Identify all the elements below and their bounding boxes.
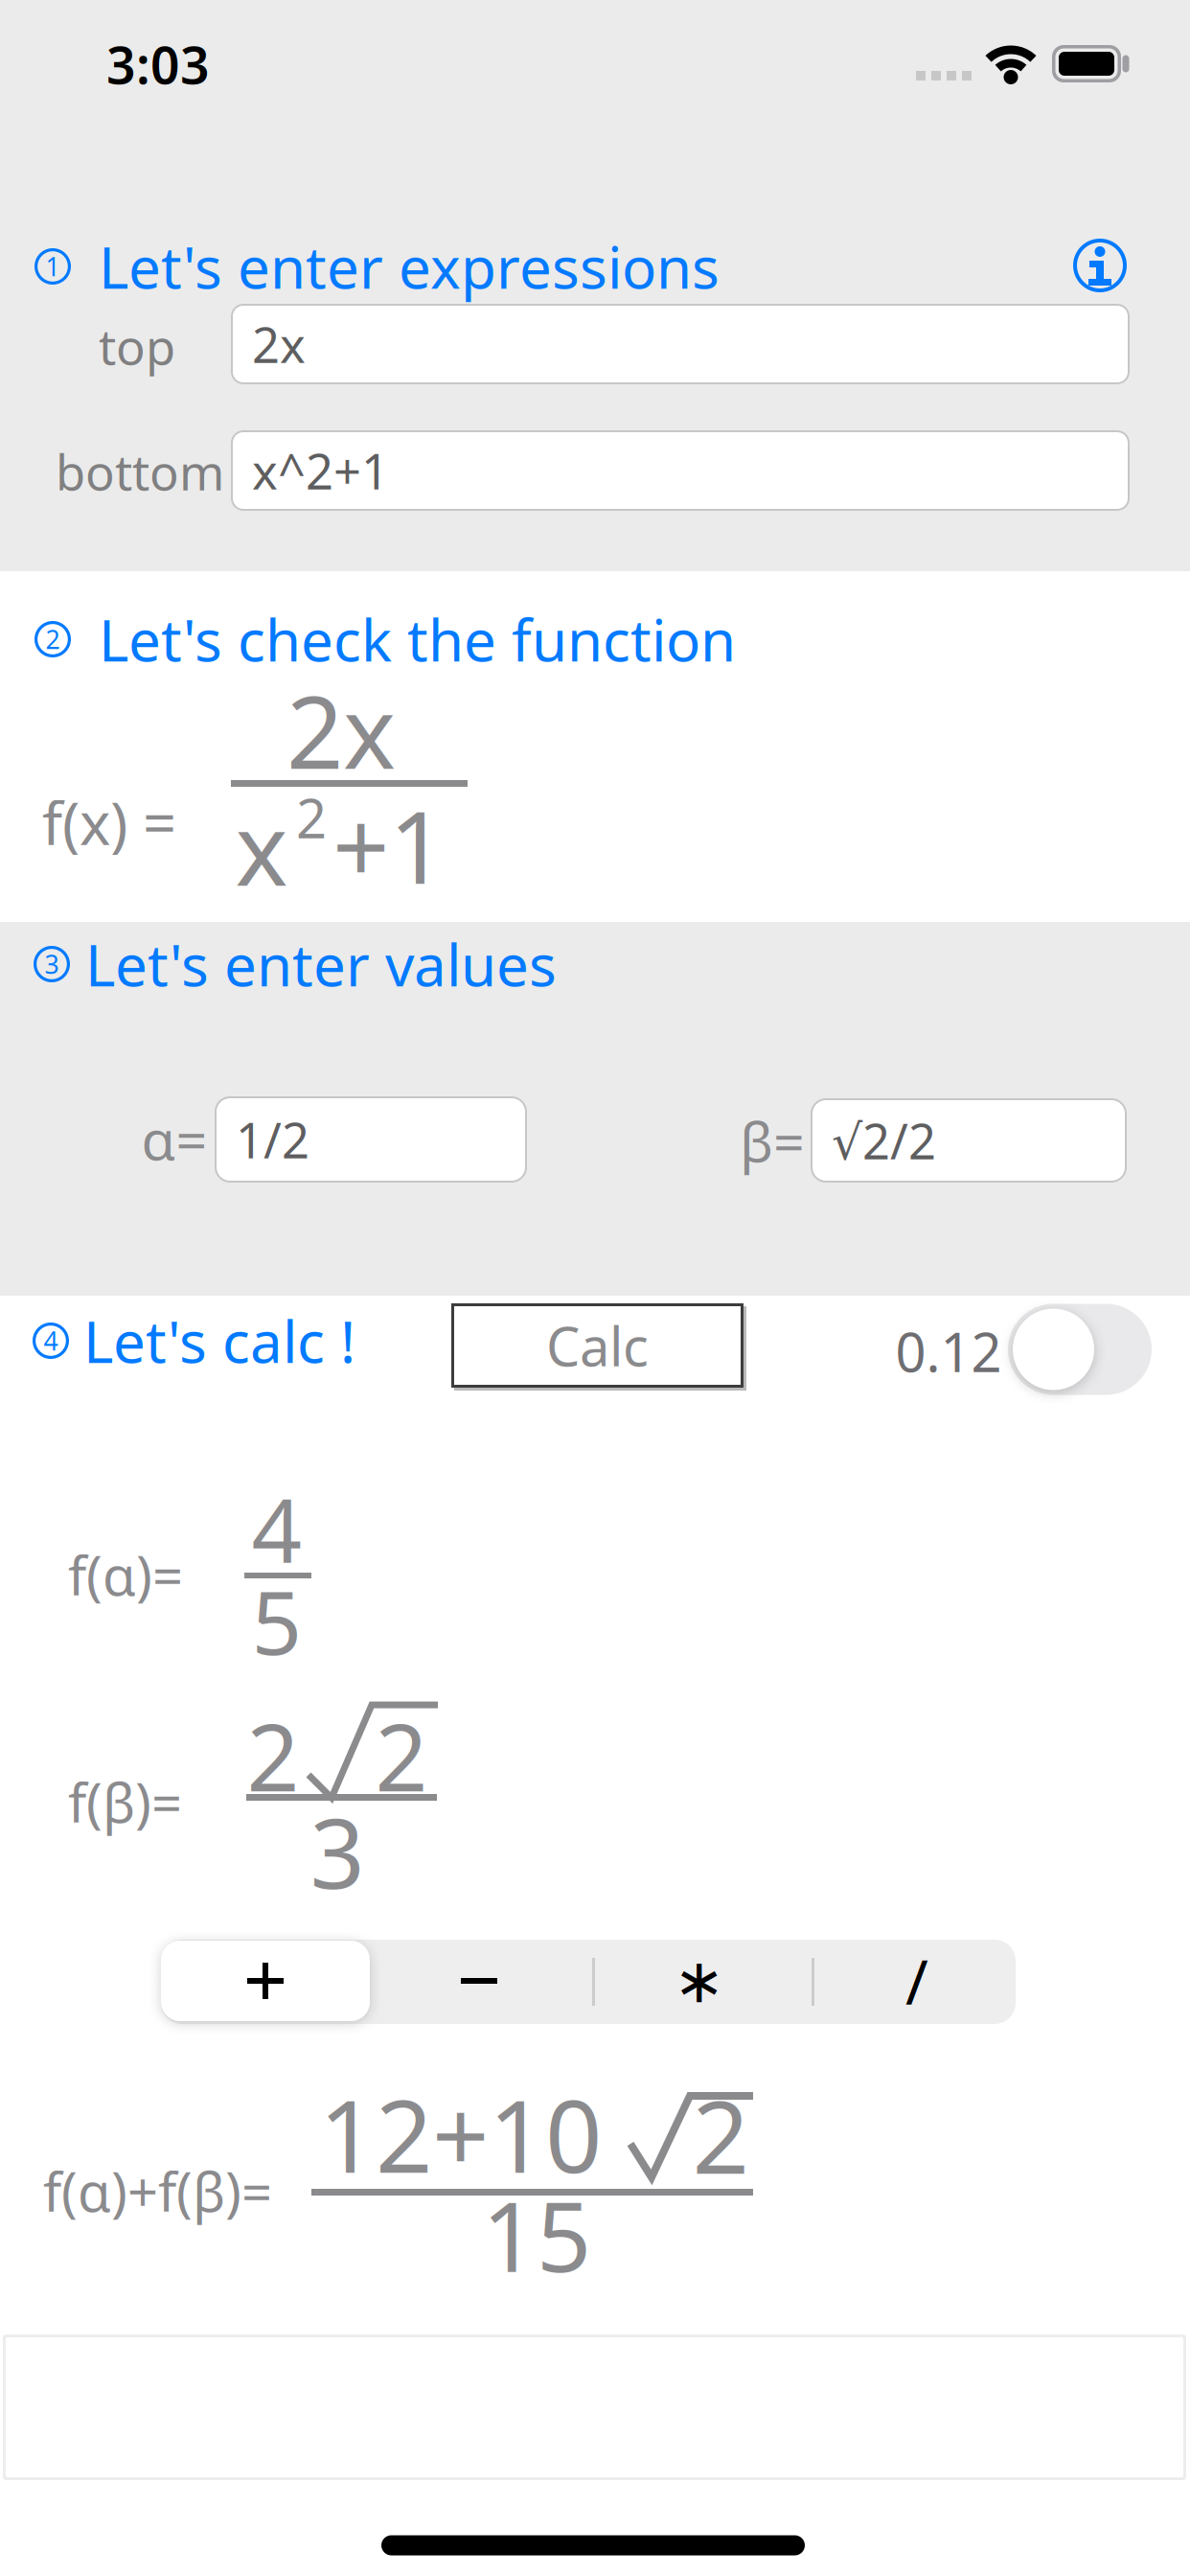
- staticText: 3:03: [106, 30, 210, 98]
- staticText: 2x: [252, 312, 306, 376]
- staticText: 2: [375, 1695, 428, 1817]
- staticText: 3: [45, 947, 59, 981]
- staticText: f(β)=: [68, 1766, 182, 1837]
- staticText: 0.12: [895, 1316, 1002, 1387]
- staticText: 4: [44, 1324, 58, 1358]
- staticText: 2: [692, 2069, 749, 2201]
- button[interactable]: x^2+1: [231, 430, 1130, 511]
- staticText: Let's calc !: [83, 1303, 355, 1379]
- staticText: 2x: [286, 664, 396, 796]
- staticText: 3: [310, 1788, 365, 1915]
- staticText: x: [235, 781, 288, 913]
- staticText: 2: [247, 1695, 299, 1817]
- staticText: f(x) =: [42, 783, 176, 861]
- button[interactable]: √2/2: [811, 1098, 1127, 1183]
- staticText: β=: [740, 1104, 805, 1177]
- staticText: 4: [252, 1470, 302, 1587]
- staticText: /: [905, 1940, 928, 2022]
- staticText: f(α)+f(β)=: [43, 2155, 272, 2226]
- staticText: Let's check the function: [99, 601, 736, 677]
- staticText: +1: [332, 779, 446, 911]
- staticText: Let's enter values: [85, 926, 557, 1002]
- staticText: Calc: [546, 1310, 649, 1381]
- button[interactable]: Calc: [451, 1303, 744, 1388]
- button[interactable]: Subtract: [383, 1941, 575, 2021]
- button[interactable]: Info: [1072, 238, 1128, 293]
- staticText: ∗: [674, 1946, 725, 2016]
- button[interactable]: Divide: [821, 1941, 1013, 2021]
- staticText: 1/2: [236, 1107, 309, 1172]
- staticText: 2: [46, 622, 60, 656]
- staticText: top: [99, 314, 175, 378]
- button[interactable]: 1/2: [215, 1096, 527, 1183]
- button[interactable]: Multiply: [604, 1941, 795, 2021]
- button[interactable]: 2x: [231, 304, 1130, 384]
- staticText: x^2+1: [252, 438, 389, 503]
- staticText: α=: [141, 1102, 207, 1175]
- staticText: 5: [252, 1562, 302, 1679]
- staticText: 15: [482, 2171, 591, 2298]
- staticText: 12+10: [319, 2068, 602, 2200]
- staticText: 1: [46, 249, 60, 283]
- staticText: f(α)=: [68, 1539, 183, 1610]
- staticText: √2/2: [832, 1108, 936, 1173]
- staticText: 2: [296, 782, 327, 853]
- button[interactable]: Decimal result: [1008, 1304, 1152, 1395]
- staticText: Let's enter expressions: [99, 228, 720, 305]
- staticText: bottom: [56, 439, 224, 504]
- button[interactable]: Add: [161, 1941, 370, 2021]
